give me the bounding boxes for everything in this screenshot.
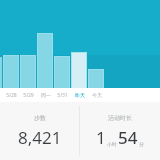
staticText: 活动时长 bbox=[108, 114, 132, 122]
button[interactable]: 5/29 bbox=[20, 88, 37, 102]
staticText: 5/29 bbox=[23, 92, 34, 99]
staticText: 1 bbox=[96, 126, 106, 149]
button[interactable]: 周一 bbox=[37, 88, 54, 102]
staticText: 周一 bbox=[41, 92, 51, 98]
staticText: 今天 bbox=[92, 92, 102, 98]
button[interactable]: 5/28 bbox=[3, 88, 20, 102]
button[interactable]: 5/31 bbox=[54, 88, 71, 102]
staticText: 5/28 bbox=[6, 92, 17, 99]
staticText: 小时 bbox=[107, 141, 117, 147]
staticText: 昨天 bbox=[75, 92, 85, 98]
button[interactable]: 昨天 bbox=[71, 88, 88, 102]
staticText: 54 bbox=[118, 126, 138, 149]
button[interactable]: 今天 bbox=[88, 88, 105, 102]
button[interactable]: 步数 bbox=[0, 102, 79, 160]
staticText: 步数 bbox=[34, 114, 46, 122]
button[interactable]: 活动时长 bbox=[80, 102, 160, 160]
staticText: 5/31 bbox=[57, 92, 68, 99]
staticText: 分 bbox=[139, 141, 144, 147]
button[interactable] bbox=[0, 0, 160, 88]
staticText: 8,421 bbox=[18, 126, 62, 149]
